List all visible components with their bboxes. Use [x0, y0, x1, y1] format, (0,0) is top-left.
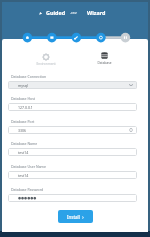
button[interactable]: Environment — [31, 54, 61, 66]
staticText: 127.0.0.1 — [18, 105, 33, 110]
staticText: Environment — [36, 62, 56, 66]
staticText: test14 — [18, 150, 29, 155]
staticText: Wizard — [87, 9, 106, 16]
button[interactable]: Database — [89, 51, 119, 65]
staticText: ●●●●●● — [18, 196, 37, 200]
button[interactable]: Wizard progress steps — [0, 0, 150, 237]
button[interactable]: Install › — [58, 210, 93, 223]
staticText: Database — [97, 61, 112, 65]
staticText: Database Host — [11, 96, 36, 101]
staticText: Database Password — [11, 187, 44, 192]
staticText: 3306 — [18, 128, 27, 133]
button[interactable]: 127.0.0.1 — [8, 103, 137, 111]
staticText: test14 — [18, 173, 29, 178]
staticText: Database Port — [11, 119, 35, 124]
button[interactable]: mysql — [8, 81, 137, 89]
button[interactable]: test14 — [8, 171, 137, 179]
staticText: Database User Name — [11, 164, 46, 169]
staticText: .csv — [70, 10, 77, 15]
staticText: Database Name — [11, 141, 38, 146]
staticText: Database Connection — [11, 74, 47, 79]
button[interactable]: test14 — [8, 148, 137, 156]
staticText: Install › — [67, 214, 84, 220]
other: Increment value — [129, 128, 133, 132]
button[interactable]: ●●●●●● — [8, 194, 137, 202]
other: Open dropdown — [129, 83, 133, 87]
staticText: Guided — [46, 9, 66, 16]
staticText: mysql — [18, 83, 28, 88]
button[interactable]: 3306 — [8, 126, 137, 134]
